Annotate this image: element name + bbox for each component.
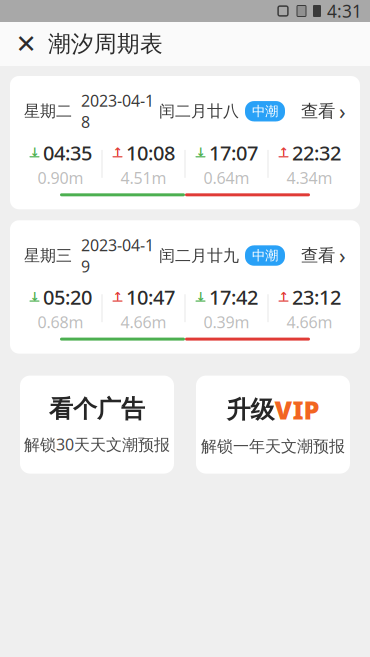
staticText: 4:31 [327,0,362,22]
staticText: › [339,241,346,270]
staticText: 04:35 [43,139,92,166]
staticText: 中潮 [252,103,278,119]
staticText: 4.66m [286,311,332,333]
staticText: 4.66m [120,311,166,333]
staticText: 查看 [301,101,335,122]
staticText: 4.34m [286,167,332,188]
staticText: ↓ [195,145,205,159]
button[interactable]: 星期二 [10,76,360,209]
staticText: 解锁30天天文潮预报 [24,434,170,455]
staticText: 4.51m [120,167,166,188]
staticText: 星期三 [24,246,72,265]
staticText: 2023-04-19 [81,234,154,277]
staticText: 闰二月廿九 [159,246,239,265]
staticText: 查看 [301,245,335,266]
staticText: 解锁一年天文潮预报 [201,437,345,456]
staticText: 看个广告 [49,394,145,424]
staticText: VIP [274,393,319,427]
staticText: 10:47 [126,284,175,310]
staticText: 0.39m [203,311,249,333]
staticText: ↑ [278,290,288,303]
staticText: 05:20 [43,284,92,310]
staticText: 0.68m [37,311,83,333]
staticText: 闰二月廿八 [159,101,239,121]
staticText: 17:42 [209,284,258,310]
staticText: › [339,97,346,125]
staticText: 0.90m [37,167,83,188]
staticText: ↑ [112,290,122,303]
staticText: 22:32 [292,139,341,166]
staticText: 2023-04-18 [81,90,154,132]
staticText: ↓ [29,145,39,159]
staticText: 星期二 [24,101,72,121]
staticText: ↓ [195,290,205,303]
button[interactable]: 星期三 [10,220,360,354]
staticText: 升级 [226,395,274,424]
button[interactable]: 关闭 [6,22,46,66]
staticText: 0.64m [203,167,249,188]
staticText: ↑ [278,145,288,159]
button[interactable]: 看个广告 [20,376,174,474]
button[interactable]: 升级 [196,376,350,474]
staticText: ↓ [29,290,39,303]
staticText: ✕ [15,30,36,58]
staticText: 10:08 [126,139,175,166]
staticText: 23:12 [292,284,341,310]
staticText: 中潮 [252,247,278,264]
staticText: 17:07 [209,139,258,166]
staticText: 潮汐周期表 [48,30,163,58]
staticText: ↑ [112,145,122,159]
